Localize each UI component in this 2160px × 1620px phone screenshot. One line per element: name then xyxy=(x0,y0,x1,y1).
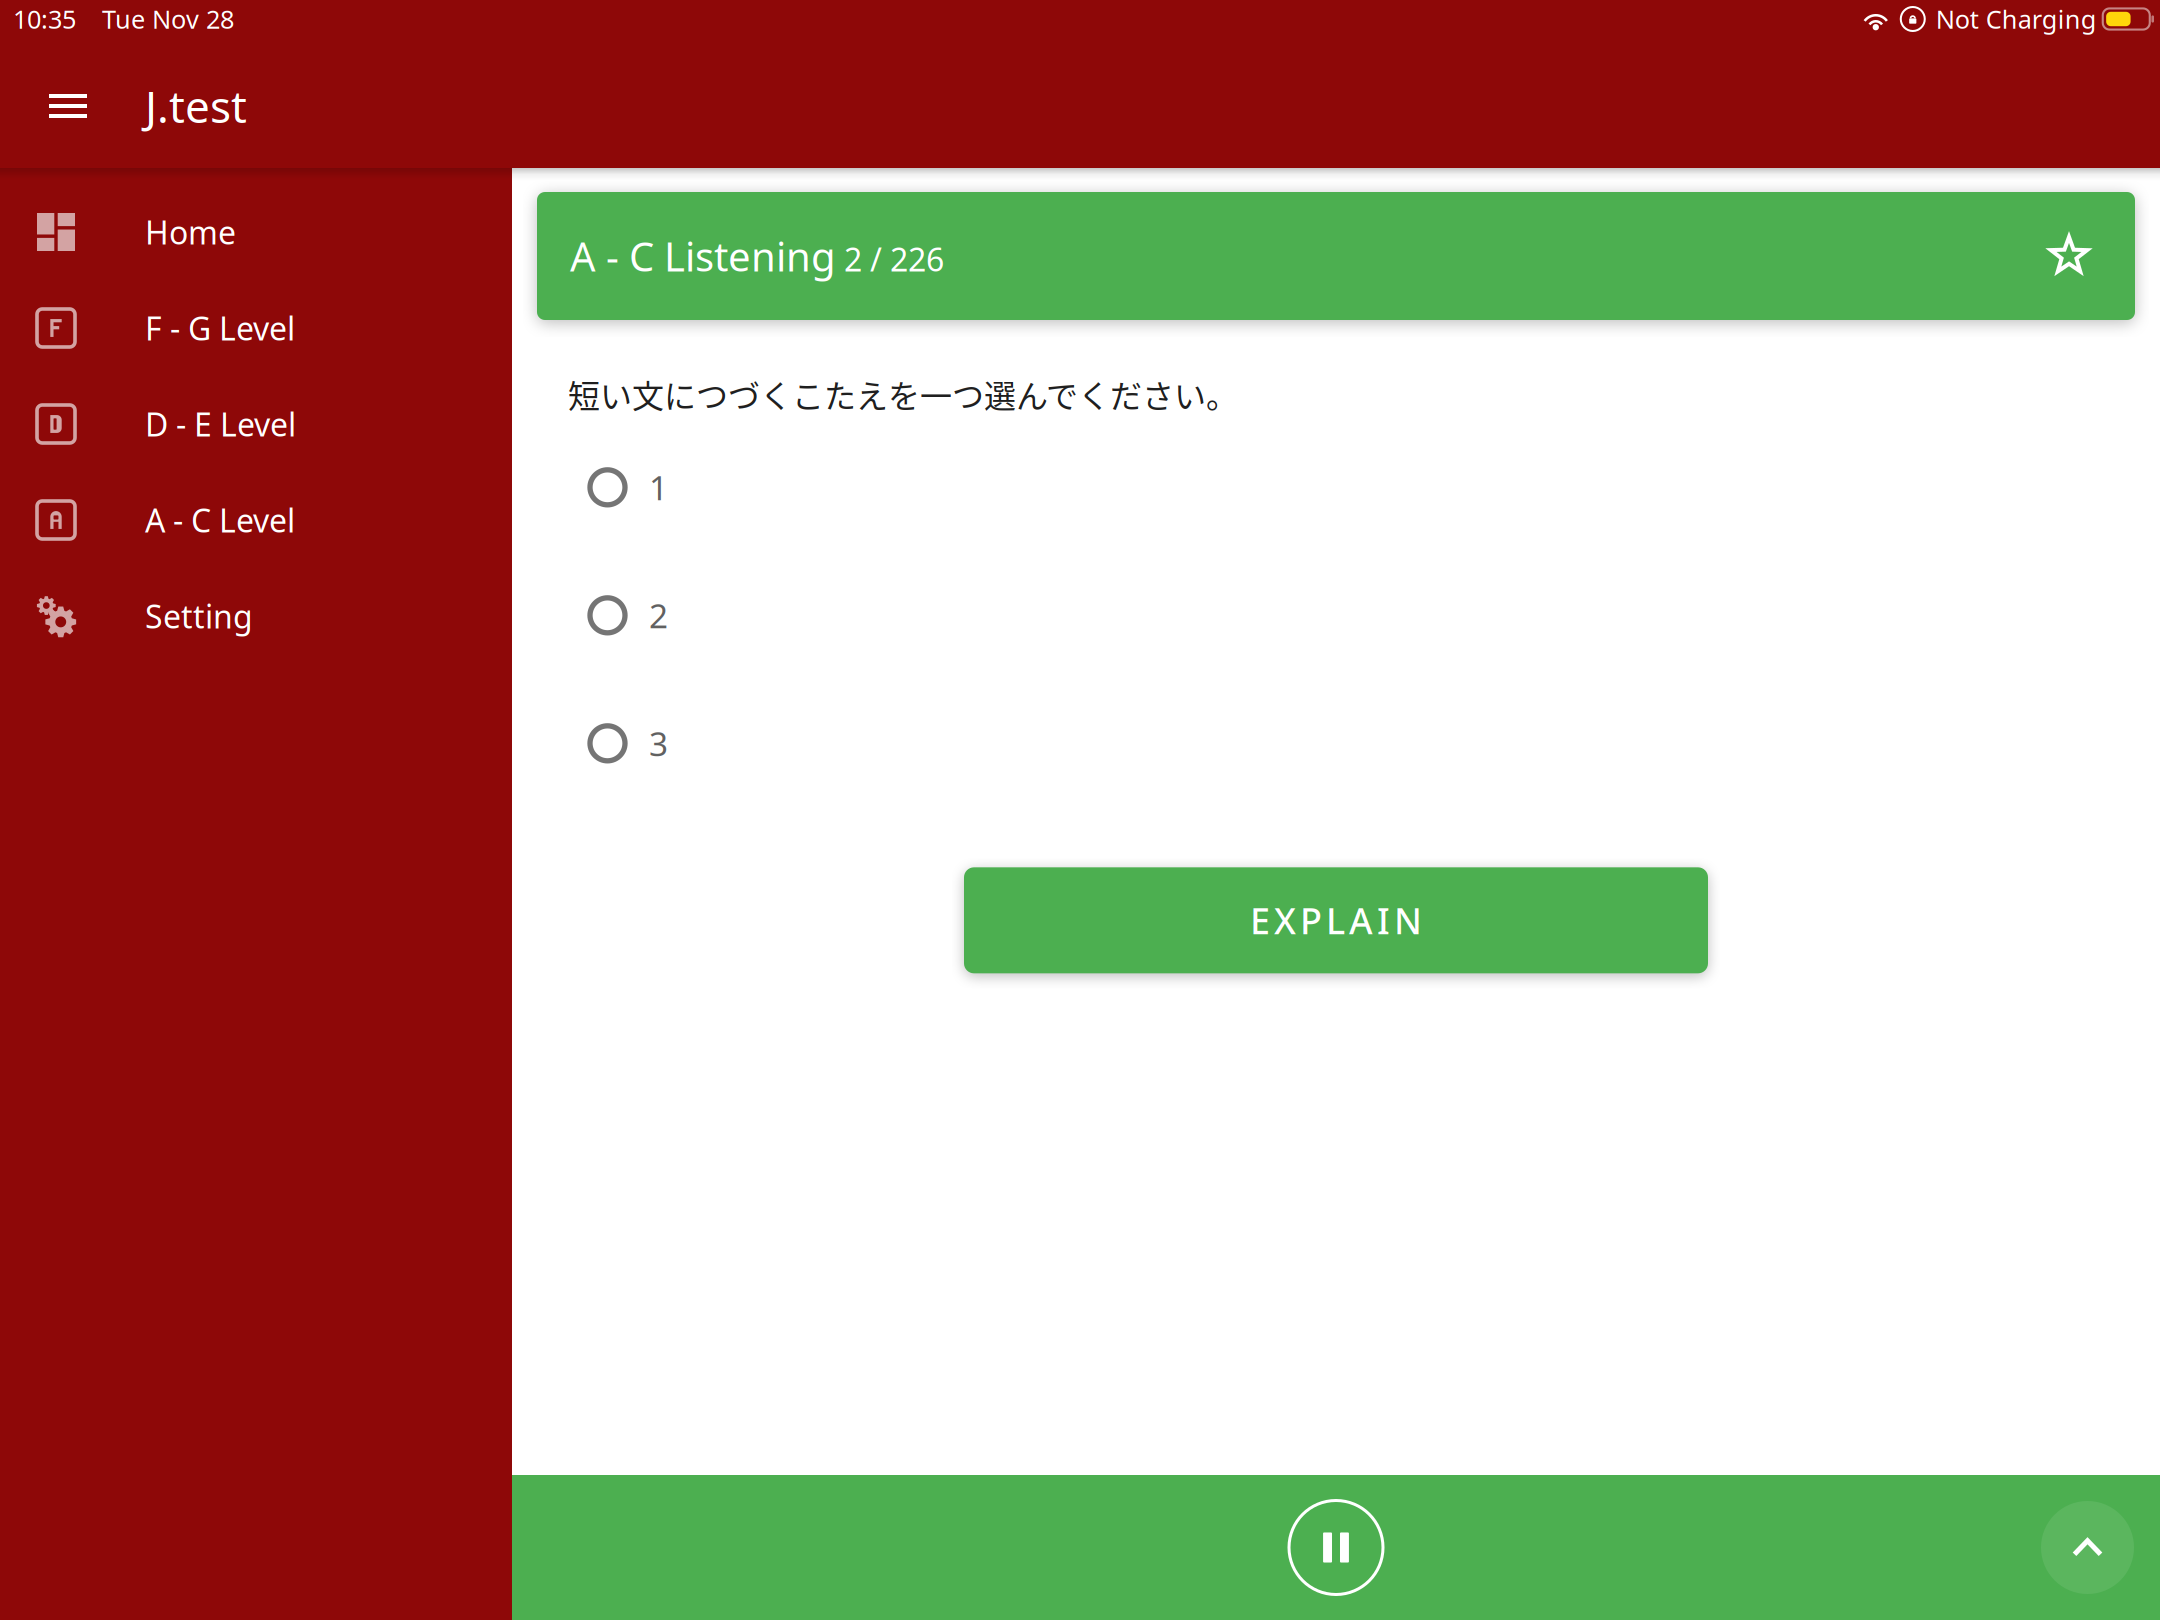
staticText: A - C Listening xyxy=(570,229,836,282)
staticText: 2 xyxy=(649,593,668,637)
staticText: Home xyxy=(145,211,236,253)
staticText: 3 xyxy=(649,721,668,765)
staticText: 1 xyxy=(649,465,668,509)
button[interactable]: EXPLAIN xyxy=(964,867,1708,973)
staticText: 10:35 xyxy=(13,2,76,36)
button[interactable]: Menu xyxy=(34,74,102,138)
button[interactable]: 2 xyxy=(512,551,2160,679)
button[interactable]: F - G Level xyxy=(0,280,512,376)
button[interactable]: 1 xyxy=(512,423,2160,551)
staticText: A - C Level xyxy=(145,499,295,541)
button[interactable]: Home xyxy=(0,184,512,280)
button[interactable]: A - C Level xyxy=(0,472,512,568)
staticText: Not Charging xyxy=(1936,2,2097,36)
staticText: 2 / 226 xyxy=(836,238,944,280)
button[interactable]: Setting xyxy=(0,568,512,664)
staticText: J.test xyxy=(145,77,247,135)
button[interactable]: Pause xyxy=(1289,1500,1383,1594)
staticText: Setting xyxy=(145,595,253,637)
button[interactable]: 3 xyxy=(512,679,2160,807)
staticText: Tue Nov 28 xyxy=(102,2,234,36)
button[interactable]: Favourite xyxy=(2039,226,2099,286)
staticText: EXPLAIN xyxy=(1250,896,1422,944)
staticText: 短い文につづくこたえを一つ選んでください。 xyxy=(568,371,1238,417)
button[interactable]: Expand player xyxy=(2041,1501,2134,1594)
button[interactable]: D - E Level xyxy=(0,376,512,472)
staticText: F - G Level xyxy=(145,307,295,349)
staticText: D - E Level xyxy=(145,403,296,445)
